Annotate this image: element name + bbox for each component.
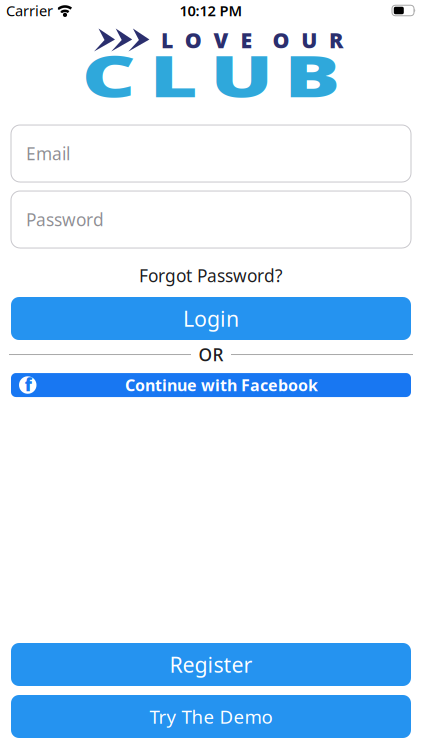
staticText: Try The Demo	[149, 704, 272, 729]
button[interactable]: Forgot Password?	[139, 264, 283, 287]
staticText: U	[301, 26, 317, 54]
staticText: L	[157, 37, 190, 113]
button[interactable]: Email	[0, 125, 422, 182]
staticText: Forgot Password?	[139, 264, 283, 287]
button[interactable]: Password	[0, 191, 422, 248]
staticText: O	[272, 26, 289, 54]
staticText: R	[329, 26, 343, 54]
staticText: Continue with Facebook	[125, 374, 318, 396]
staticText: f	[25, 373, 32, 396]
staticText: V	[214, 26, 229, 54]
staticText: Password	[26, 208, 104, 231]
staticText: E	[240, 26, 252, 54]
button[interactable]: Continue with Facebook	[0, 373, 422, 397]
staticText: U	[220, 37, 263, 113]
staticText: 10:12 PM	[179, 1, 242, 20]
button[interactable]: Try The Demo	[0, 695, 422, 738]
staticText: O	[185, 26, 202, 54]
staticText: Register	[169, 650, 252, 679]
staticText: Email	[26, 142, 70, 165]
staticText: Login	[183, 304, 239, 333]
staticText: L	[161, 26, 173, 54]
button[interactable]: Register	[0, 643, 422, 686]
staticText: OR	[198, 343, 223, 366]
staticText: B	[293, 37, 332, 113]
staticText: Carrier	[6, 1, 53, 20]
button[interactable]: Login	[0, 297, 422, 340]
staticText: C	[90, 37, 127, 113]
